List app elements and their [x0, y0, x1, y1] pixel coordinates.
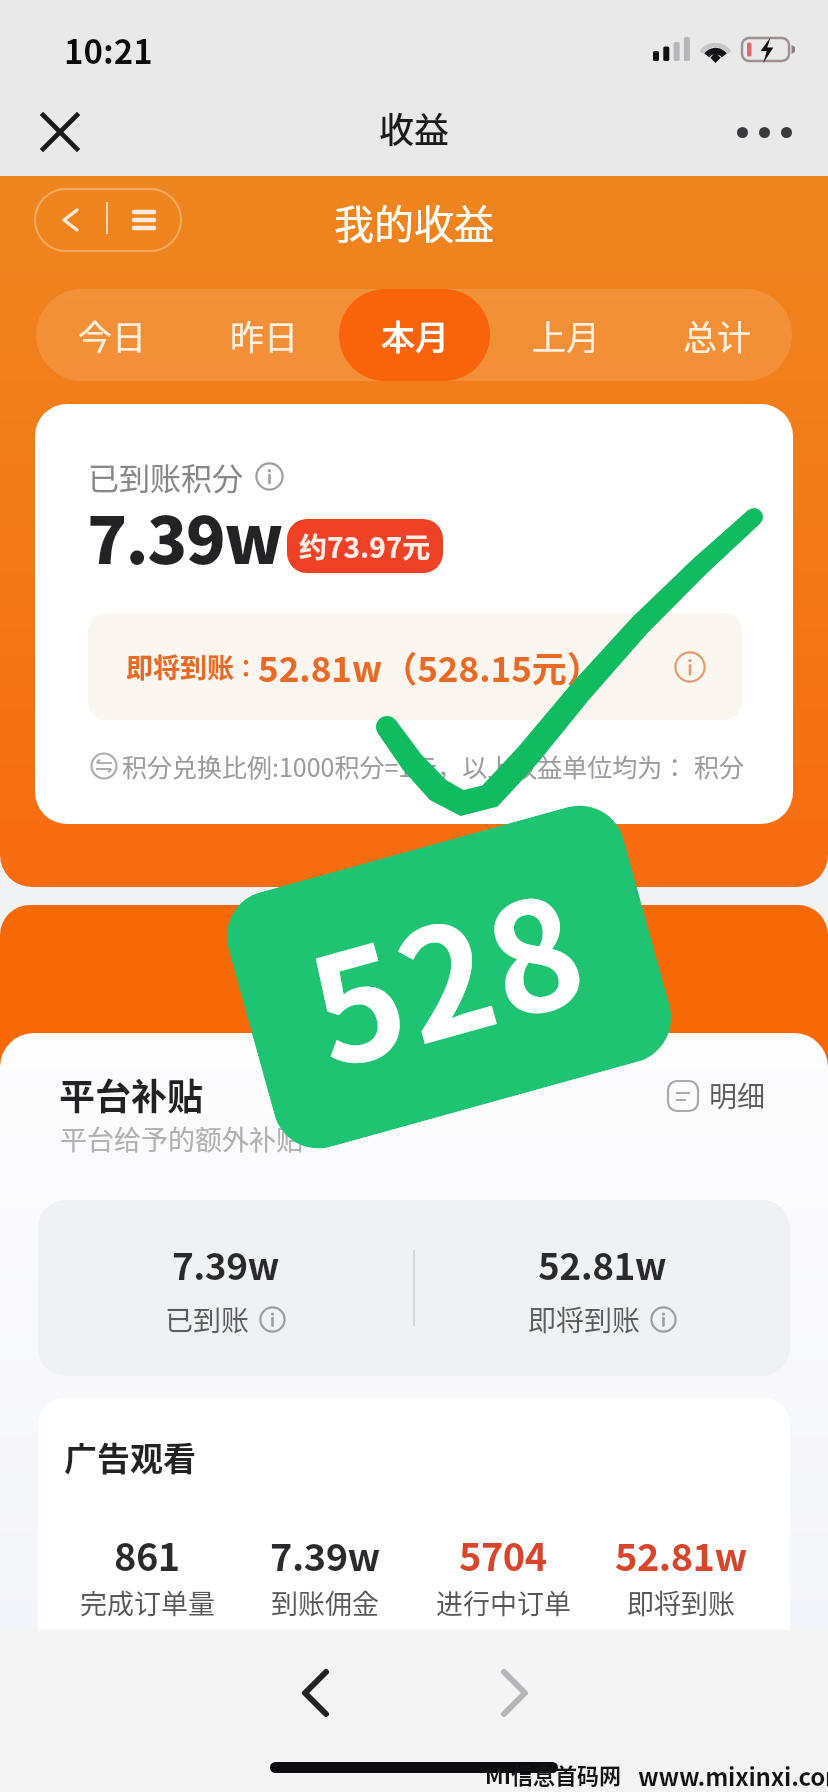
button[interactable]: Forward [468, 1646, 562, 1740]
staticText: 明细 [709, 1075, 766, 1116]
button[interactable]: 今日 [36, 289, 188, 381]
button[interactable]: 明细 [668, 1075, 766, 1116]
staticText: ： [234, 649, 258, 684]
button[interactable]: Close [22, 94, 98, 170]
button[interactable]: 52.81w [415, 1200, 790, 1376]
staticText: 本月 [381, 311, 449, 360]
staticText: 7.39w [270, 1527, 380, 1582]
staticText: 528 [284, 829, 607, 1111]
button[interactable]: 7.39w [236, 1527, 414, 1622]
staticText: 7.39w [87, 487, 282, 583]
staticText: 52.81w [538, 1237, 667, 1291]
staticText: www.mixinxi.com [638, 1758, 828, 1792]
button[interactable]: 861 [58, 1527, 236, 1622]
staticText: 上月 [532, 311, 600, 360]
button[interactable]: 7.39w [38, 1200, 413, 1376]
staticText: 到账佣金 [271, 1583, 379, 1622]
button[interactable]: 5704 [414, 1527, 592, 1622]
button[interactable]: 总计 [641, 289, 792, 381]
button[interactable]: 本月 [339, 289, 490, 381]
staticText: 平台给予的额外补贴 [60, 1119, 303, 1158]
staticText: 即将到账 [627, 1583, 735, 1622]
staticText: 平台补贴 [338, 951, 491, 1006]
staticText: 即将到账 [126, 647, 234, 686]
staticText: 52.81w（528.15元） [258, 641, 602, 692]
staticText: MI信息首码网 [485, 1758, 622, 1790]
staticText: 861 [114, 1527, 180, 1582]
staticText: 已到账 [165, 1299, 250, 1340]
staticText: 7.39w [172, 1237, 279, 1291]
staticText: 完成订单量 [80, 1583, 215, 1622]
staticText: 平台补贴 [59, 1068, 204, 1120]
staticText: 积分 [694, 748, 745, 784]
staticText: 我的收益 [334, 193, 494, 251]
staticText: 10:21 [64, 26, 153, 74]
staticText: 约73.97元 [299, 526, 431, 567]
staticText: 5704 [459, 1527, 547, 1582]
button[interactable]: Back [268, 1646, 362, 1740]
staticText: 收益 [379, 102, 450, 153]
button[interactable]: Back and menu [34, 188, 182, 252]
staticText: 广告观看 [64, 1433, 196, 1481]
staticText: 总计 [683, 311, 751, 360]
button[interactable]: 52.81w [592, 1527, 770, 1622]
staticText: 已到账积分 [88, 454, 243, 499]
staticText: 即将到账 [528, 1299, 641, 1340]
button[interactable]: 昨日 [188, 289, 339, 381]
button[interactable]: More options [720, 94, 808, 170]
staticText: 52.81w [615, 1527, 747, 1582]
staticText: 积分兑换比例:1000积分=1元，以上收益单位均为： [122, 748, 688, 784]
staticText: 今日 [78, 311, 146, 360]
button[interactable]: 上月 [490, 289, 641, 381]
staticText: 昨日 [230, 311, 298, 360]
staticText: 进行中订单 [436, 1583, 571, 1622]
